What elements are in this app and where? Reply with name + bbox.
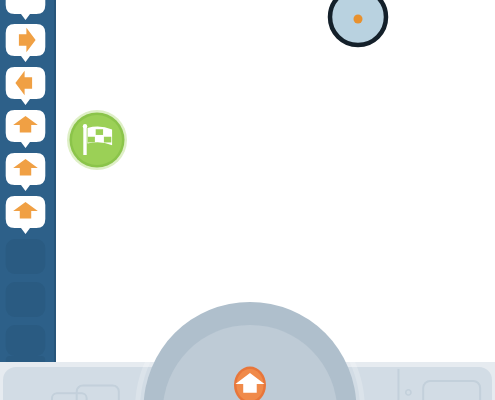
button[interactable]: Run program	[198, 362, 307, 400]
button[interactable]: Empty command slot	[0, 237, 55, 280]
button[interactable]: Move right	[0, 22, 55, 65]
button[interactable]: Move left	[0, 65, 55, 108]
button[interactable]: Empty command slot	[0, 323, 55, 362]
button[interactable]: Move forward	[0, 108, 55, 151]
button[interactable]: Start, green flag	[67, 110, 127, 170]
button[interactable]: Move forward	[0, 194, 55, 237]
button[interactable]: Move forward	[0, 0, 55, 22]
button[interactable]: Empty command slot	[0, 280, 55, 323]
button[interactable]: Robot marker	[328, 0, 388, 47]
button[interactable]: More options	[307, 362, 495, 400]
button[interactable]: Workspace tools	[0, 362, 198, 400]
button[interactable]: Move forward	[0, 151, 55, 194]
